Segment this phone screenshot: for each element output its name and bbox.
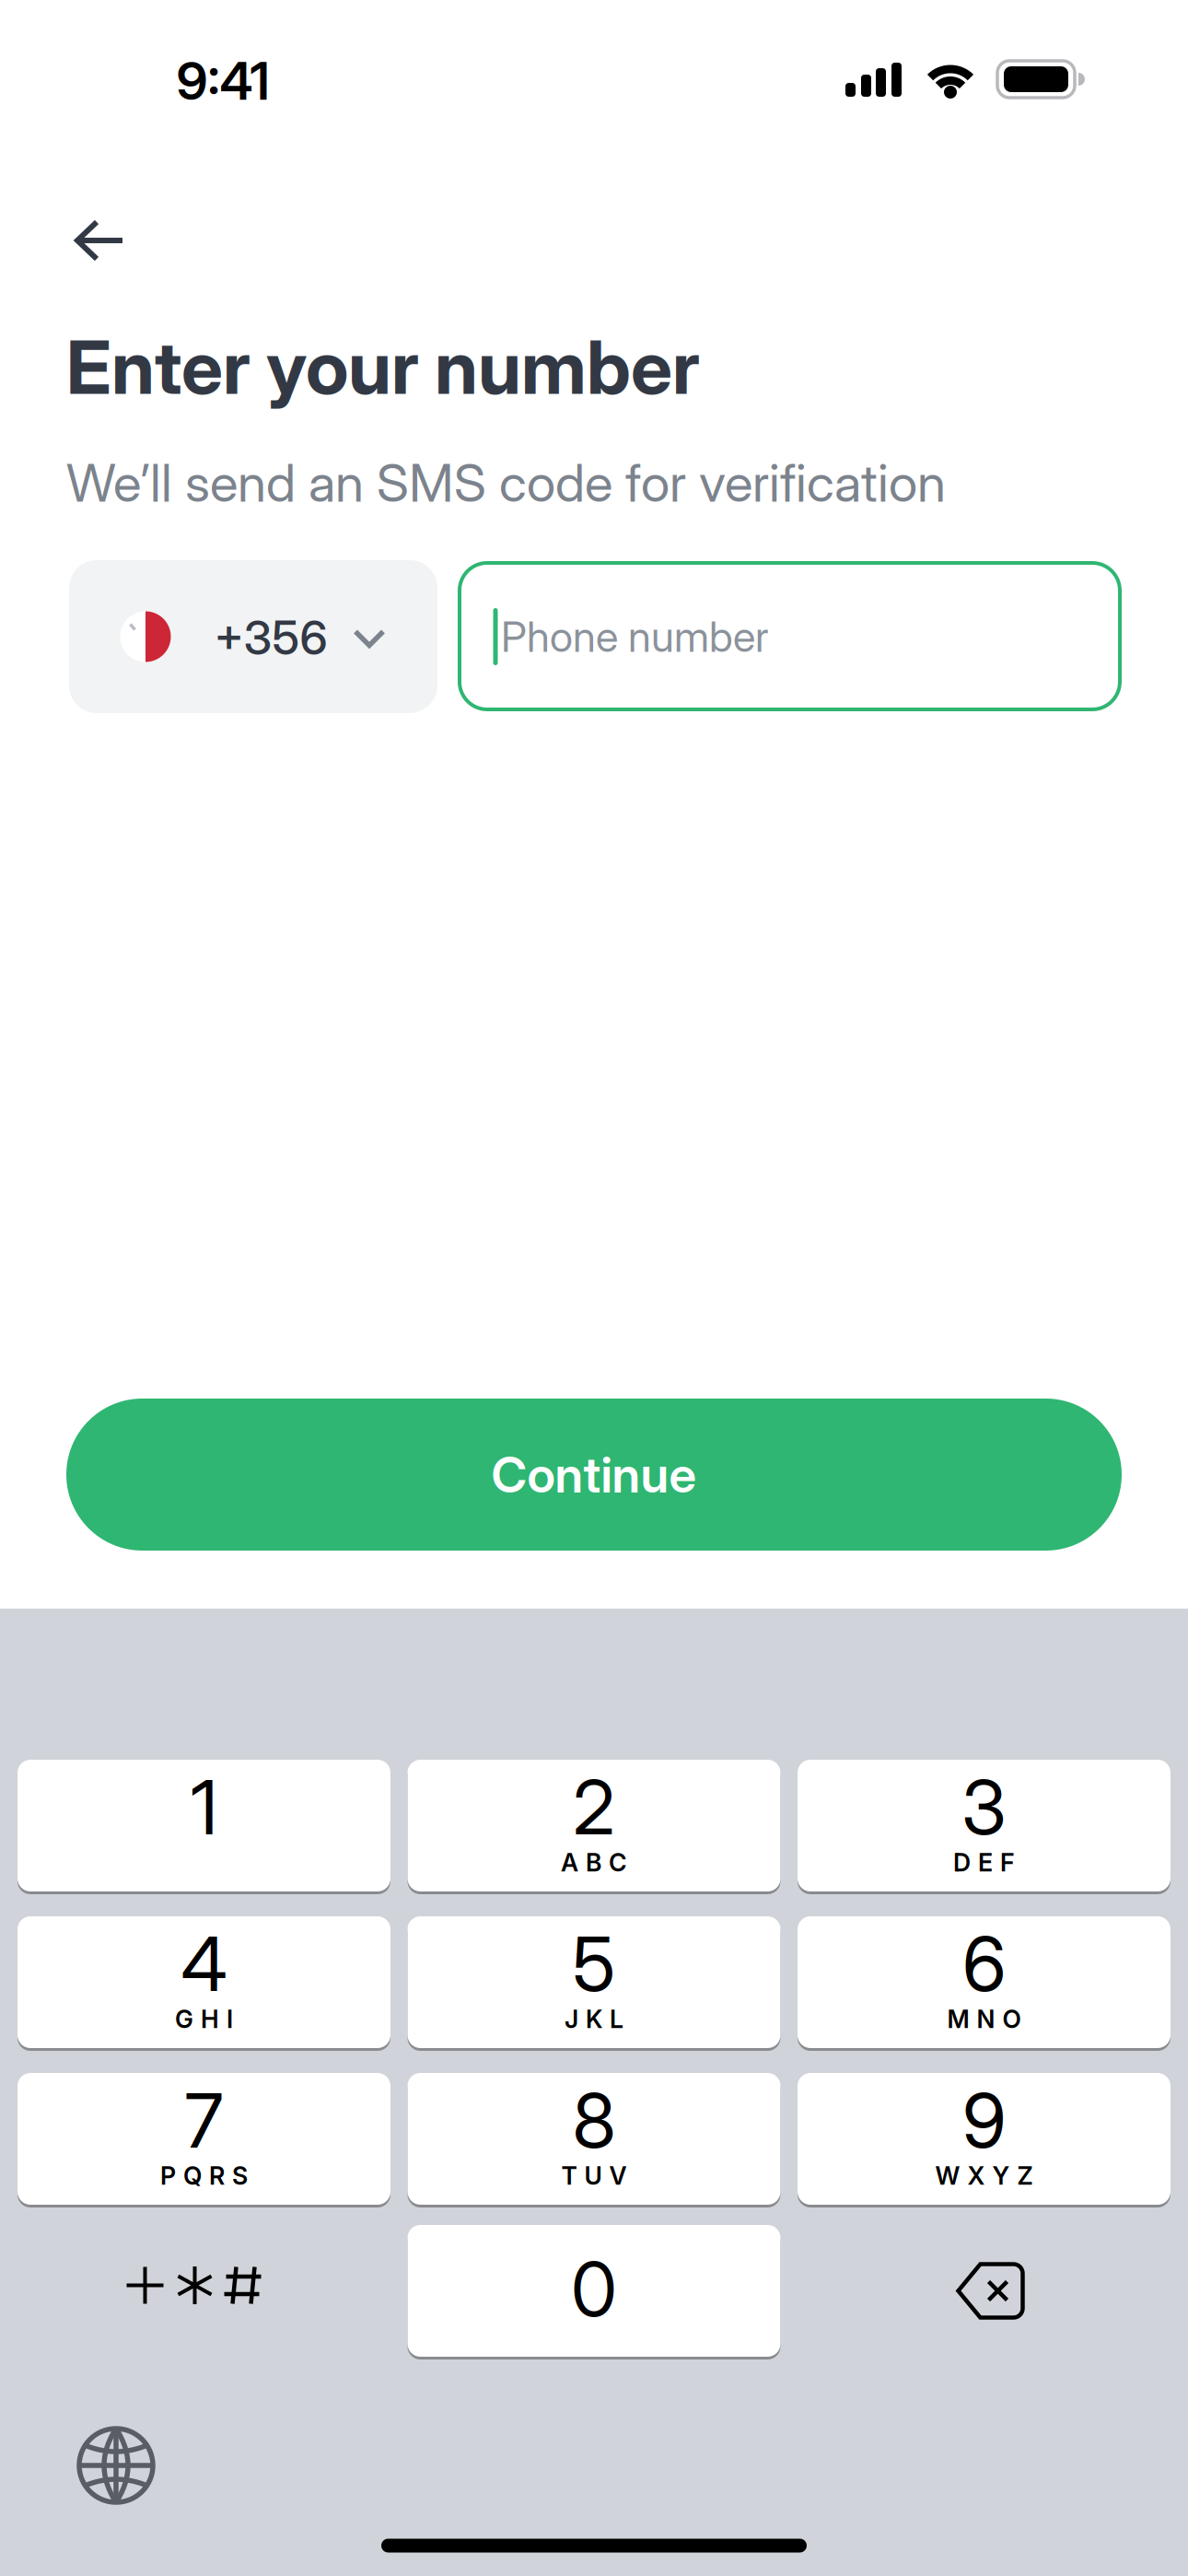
staticText: DEF [953,1848,1015,1877]
staticText: ABC [561,1848,627,1877]
staticText: WXYZ [935,2161,1033,2191]
staticText: Continue [491,1445,697,1504]
button[interactable]: Country code +356 [69,560,437,713]
staticText: 1 [191,1762,217,1852]
button[interactable]: 6 [798,1916,1171,2048]
staticText: 2 [573,1762,615,1852]
staticText: 3 [961,1762,1007,1852]
button[interactable]: 3 [798,1760,1171,1891]
staticText: We’ll send an SMS code for verification [66,451,946,514]
staticText: 0 [571,2244,617,2334]
button[interactable]: 7 [17,2073,390,2205]
button[interactable]: 1 [17,1760,390,1891]
staticText: Phone number [501,611,769,662]
button[interactable]: 0 [408,2225,780,2357]
button[interactable]: Next keyboard [70,2419,162,2512]
staticText: 4 [181,1918,227,2009]
staticText: JKL [565,2004,623,2034]
button[interactable]: Back [75,221,124,260]
staticText: 5 [572,1918,616,2009]
staticText: PQRS [160,2161,248,2191]
staticText: +356 [214,609,327,666]
staticText: 7 [185,2075,223,2166]
button[interactable]: 2 [408,1760,780,1891]
button[interactable]: Plus star pound [126,2249,282,2333]
staticText: GHI [175,2004,233,2034]
staticText: MNO [947,2004,1021,2034]
button[interactable]: 8 [408,2073,780,2205]
button[interactable]: 5 [408,1916,780,2048]
button[interactable]: Phone number [460,563,1120,709]
staticText: 9 [962,2075,1006,2166]
button[interactable]: 9 [798,2073,1171,2205]
staticText: Enter your number [66,323,700,412]
staticText: TUV [561,2161,627,2191]
staticText: 8 [572,2075,616,2166]
staticText: 9:41 [176,50,269,112]
button[interactable]: Delete [952,2264,1016,2318]
staticText: 6 [962,1918,1006,2009]
button[interactable]: 4 [17,1916,390,2048]
button[interactable]: Continue [66,1399,1122,1551]
